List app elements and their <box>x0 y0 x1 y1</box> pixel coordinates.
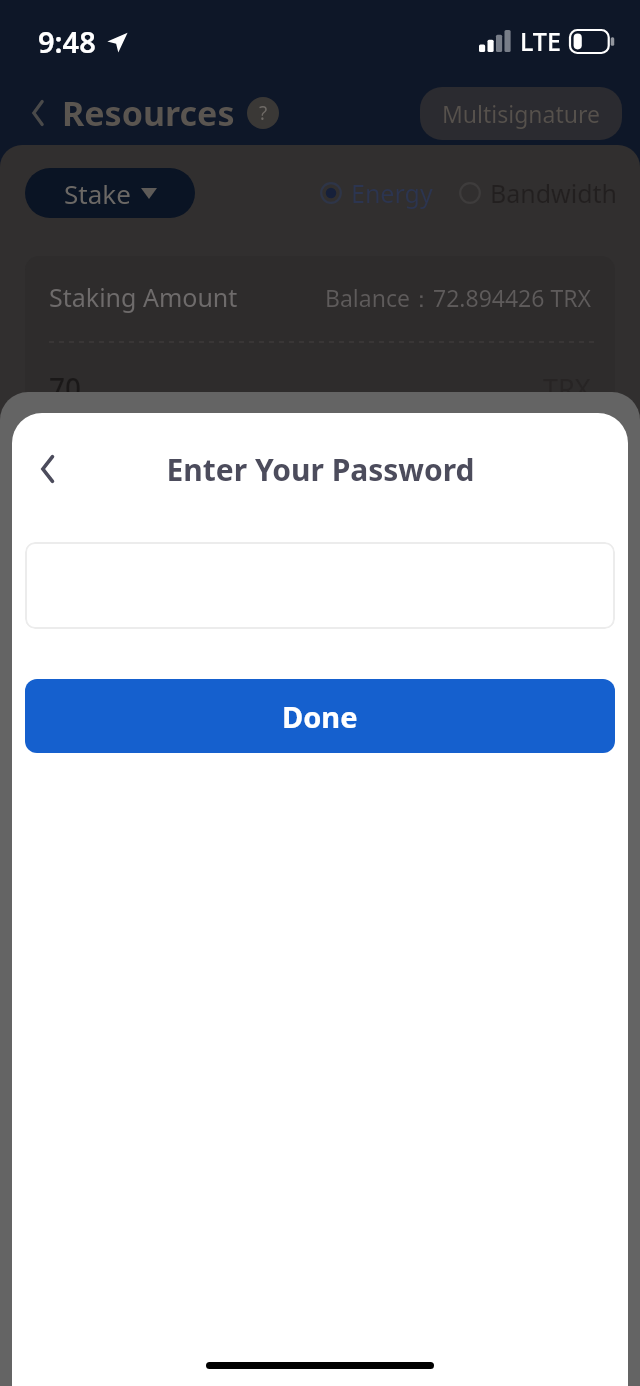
staticText: Enter Your Password <box>166 449 475 490</box>
staticText: Multisignature <box>442 98 600 129</box>
staticText: Resources <box>62 90 235 136</box>
staticText: ? <box>259 100 268 126</box>
button[interactable]: Energy <box>320 176 433 210</box>
button[interactable]: Password input <box>25 542 615 629</box>
button[interactable]: Multisignature <box>420 87 622 140</box>
button[interactable]: Help <box>247 97 279 129</box>
button[interactable]: Bandwidth <box>459 176 618 210</box>
staticText: 9:48 <box>38 22 96 61</box>
staticText: LTE <box>520 24 561 58</box>
staticText: 72.894426 TRX <box>433 282 591 313</box>
staticText: Energy <box>351 176 433 210</box>
staticText: Done <box>282 697 358 736</box>
staticText: Stake <box>64 176 131 211</box>
staticText: TRX <box>543 370 591 407</box>
staticText: 70 <box>49 369 82 407</box>
staticText: Balance： <box>325 282 433 313</box>
button[interactable]: Back <box>24 445 72 493</box>
staticText: Staking Amount <box>49 280 238 314</box>
button[interactable]: Done <box>25 679 615 753</box>
button[interactable]: Stake <box>25 168 195 218</box>
button[interactable]: Back <box>18 93 58 133</box>
staticText: Bandwidth <box>490 176 618 210</box>
